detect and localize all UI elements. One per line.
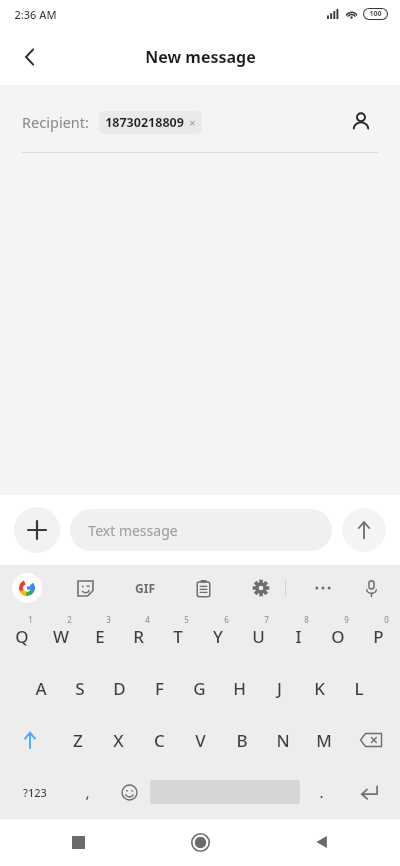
staticText: 2:36 AM <box>14 7 57 22</box>
button[interactable]: . <box>300 766 342 818</box>
staticText: Text message <box>88 521 178 540</box>
button[interactable]: E <box>80 610 119 662</box>
staticText: 8 <box>304 614 309 625</box>
button[interactable]: Text message <box>70 509 332 551</box>
staticText: . <box>319 782 324 802</box>
staticText: 6 <box>224 614 229 625</box>
button[interactable]: B <box>221 714 262 766</box>
button[interactable]: Z <box>57 714 98 766</box>
button[interactable]: C <box>139 714 180 766</box>
button[interactable]: Clipboard <box>188 573 218 603</box>
button[interactable]: T <box>158 610 198 662</box>
button[interactable]: Backspace <box>344 714 398 766</box>
staticText: E <box>95 625 105 648</box>
staticText: I <box>295 625 302 648</box>
staticText: O <box>331 625 345 648</box>
staticText: R <box>133 625 144 648</box>
button[interactable]: P <box>358 610 398 662</box>
button[interactable]: W <box>41 610 80 662</box>
button[interactable]: H <box>219 662 259 714</box>
staticText: G <box>193 677 206 700</box>
button[interactable]: Google search <box>12 573 42 603</box>
staticText: U <box>252 625 265 648</box>
button[interactable]: L <box>339 662 379 714</box>
button[interactable]: X <box>98 714 139 766</box>
button[interactable]: V <box>180 714 221 766</box>
staticText: Z <box>73 729 83 752</box>
button[interactable]: Enter <box>342 766 396 818</box>
button[interactable]: O <box>318 610 358 662</box>
button[interactable]: S <box>60 662 99 714</box>
staticText: J <box>277 677 282 700</box>
staticText: C <box>154 729 165 752</box>
staticText: ?123 <box>23 785 47 800</box>
staticText: D <box>113 677 126 700</box>
button[interactable]: I <box>278 610 318 662</box>
staticText: F <box>155 677 164 700</box>
button[interactable]: M <box>303 714 344 766</box>
button[interactable]: 18730218809 <box>99 111 202 134</box>
button[interactable]: Q <box>2 610 41 662</box>
button[interactable]: Home <box>172 818 228 866</box>
button[interactable]: N <box>262 714 303 766</box>
staticText: V <box>195 729 206 752</box>
staticText: W <box>53 625 69 648</box>
staticText: Recipient: <box>22 112 89 132</box>
staticText: 5 <box>184 614 189 625</box>
staticText: 0 <box>384 614 389 625</box>
staticText: Q <box>15 625 29 648</box>
button[interactable]: More options <box>308 573 338 603</box>
button[interactable]: G <box>179 662 219 714</box>
staticText: P <box>373 625 384 648</box>
button[interactable]: Back <box>294 818 350 866</box>
staticText: , <box>85 782 90 802</box>
button[interactable]: U <box>238 610 278 662</box>
button[interactable]: Contacts <box>344 105 378 139</box>
staticText: H <box>233 677 246 700</box>
staticText: N <box>276 729 290 752</box>
staticText: L <box>354 677 364 700</box>
button[interactable]: ?123 <box>4 766 66 818</box>
staticText: 1 <box>28 614 33 625</box>
button[interactable]: Voice input <box>356 573 386 603</box>
staticText: S <box>75 677 85 700</box>
staticText: 7 <box>264 614 269 625</box>
button[interactable]: J <box>259 662 299 714</box>
button[interactable]: Recents <box>50 818 106 866</box>
staticText: 3 <box>106 614 111 625</box>
button[interactable]: Settings <box>246 573 276 603</box>
button[interactable]: Send <box>342 508 386 552</box>
staticText: New message <box>145 46 256 68</box>
staticText: T <box>173 625 183 648</box>
staticText: M <box>316 729 332 752</box>
button[interactable]: Add attachment <box>14 507 60 553</box>
button[interactable]: R <box>119 610 158 662</box>
button[interactable]: GIF <box>128 571 162 605</box>
staticText: GIF <box>135 580 155 596</box>
button[interactable]: Back <box>8 35 52 79</box>
button[interactable]: Shift <box>2 714 57 766</box>
staticText: 4 <box>145 614 150 625</box>
staticText: A <box>35 677 47 700</box>
button[interactable]: , <box>66 766 108 818</box>
button[interactable]: D <box>99 662 139 714</box>
staticText: B <box>236 729 248 752</box>
button[interactable]: K <box>299 662 339 714</box>
staticText: 9 <box>344 614 349 625</box>
button[interactable]: Emoji <box>108 766 150 818</box>
button[interactable]: Y <box>198 610 238 662</box>
staticText: Y <box>213 625 223 648</box>
staticText: X <box>113 729 124 752</box>
button[interactable]: F <box>139 662 179 714</box>
button[interactable]: Stickers <box>70 573 100 603</box>
staticText: 100 <box>369 9 382 19</box>
staticText: K <box>314 677 325 700</box>
button[interactable]: A <box>21 662 60 714</box>
staticText: × <box>189 115 196 130</box>
staticText: 2 <box>67 614 72 625</box>
staticText: 18730218809 <box>105 114 184 131</box>
